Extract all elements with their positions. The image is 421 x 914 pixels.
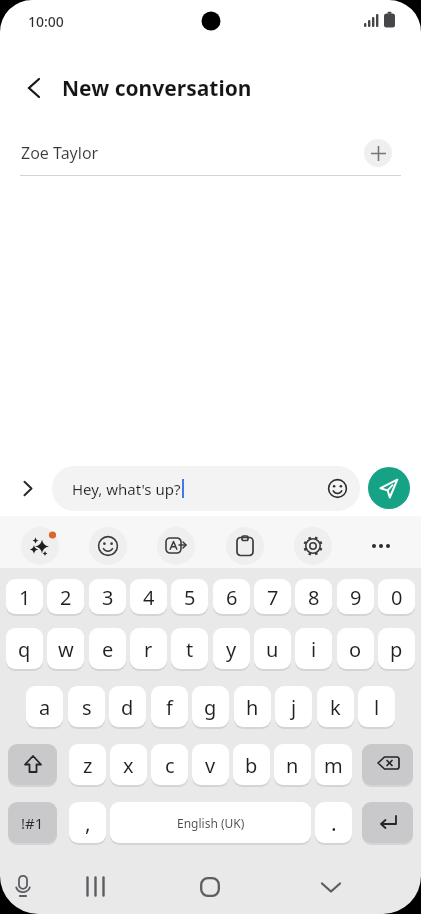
button[interactable]: g bbox=[192, 686, 229, 728]
button[interactable] bbox=[362, 527, 400, 565]
staticText: i bbox=[311, 636, 317, 663]
button[interactable]: s bbox=[68, 686, 105, 728]
staticText: , bbox=[85, 809, 91, 838]
staticText: 6 bbox=[226, 584, 238, 611]
button[interactable]: h bbox=[234, 686, 271, 728]
button[interactable]: 4 bbox=[130, 579, 167, 615]
staticText: English (UK) bbox=[177, 815, 245, 831]
button[interactable] bbox=[89, 527, 127, 565]
staticText: n bbox=[286, 752, 299, 779]
staticText: 5 bbox=[184, 584, 196, 611]
button[interactable] bbox=[321, 883, 341, 903]
button[interactable] bbox=[364, 139, 392, 167]
button[interactable]: j bbox=[275, 686, 312, 728]
staticText: t bbox=[186, 636, 194, 663]
button[interactable]: t bbox=[171, 628, 208, 670]
button[interactable] bbox=[368, 467, 410, 509]
button[interactable]: m bbox=[315, 744, 352, 786]
staticText: g bbox=[204, 694, 217, 721]
staticText: w bbox=[58, 636, 74, 663]
button[interactable] bbox=[226, 527, 264, 565]
staticText: v bbox=[205, 752, 216, 779]
button[interactable] bbox=[8, 744, 57, 786]
button[interactable]: , bbox=[69, 802, 106, 844]
button[interactable] bbox=[294, 527, 332, 565]
button[interactable]: 0 bbox=[378, 579, 415, 615]
button[interactable]: 8 bbox=[295, 579, 332, 615]
button[interactable]: f bbox=[151, 686, 188, 728]
staticText: 3 bbox=[102, 584, 114, 611]
button[interactable]: y bbox=[213, 628, 250, 670]
button[interactable]: k bbox=[317, 686, 354, 728]
staticText: !#1 bbox=[21, 813, 44, 833]
button[interactable] bbox=[21, 481, 36, 496]
staticText: 8 bbox=[308, 584, 320, 611]
button[interactable]: w bbox=[47, 628, 84, 670]
button[interactable]: i bbox=[295, 628, 332, 670]
staticText: k bbox=[330, 694, 341, 721]
staticText: j bbox=[291, 694, 297, 721]
staticText: s bbox=[82, 694, 92, 721]
button[interactable]: p bbox=[378, 628, 415, 670]
button[interactable]: 7 bbox=[254, 579, 291, 615]
button[interactable]: e bbox=[89, 628, 126, 670]
button[interactable] bbox=[86, 877, 105, 896]
staticText: p bbox=[390, 636, 403, 663]
button[interactable]: o bbox=[337, 628, 374, 670]
button[interactable]: v bbox=[192, 744, 229, 786]
button[interactable]: English (UK) bbox=[110, 802, 311, 844]
staticText: 4 bbox=[143, 584, 155, 611]
staticText: f bbox=[166, 694, 173, 721]
button[interactable]: n bbox=[274, 744, 311, 786]
staticText: u bbox=[266, 636, 279, 663]
staticText: Hey, what's up? bbox=[72, 479, 181, 499]
staticText: h bbox=[246, 694, 259, 721]
staticText: 0 bbox=[391, 584, 403, 611]
staticText: e bbox=[102, 636, 114, 663]
staticText: New conversation bbox=[62, 74, 252, 103]
staticText: 2 bbox=[60, 584, 72, 611]
button[interactable]: 3 bbox=[89, 579, 126, 615]
staticText: a bbox=[39, 694, 51, 721]
staticText: r bbox=[144, 636, 153, 663]
staticText: b bbox=[245, 752, 258, 779]
staticText: d bbox=[121, 694, 134, 721]
staticText: l bbox=[374, 694, 380, 721]
button[interactable] bbox=[157, 527, 195, 565]
button[interactable]: x bbox=[110, 744, 147, 786]
staticText: 10:00 bbox=[28, 12, 64, 31]
button[interactable]: !#1 bbox=[8, 802, 57, 844]
staticText: o bbox=[349, 636, 362, 663]
button[interactable]: r bbox=[130, 628, 167, 670]
staticText: c bbox=[165, 752, 175, 779]
button[interactable]: l bbox=[358, 686, 395, 728]
button[interactable] bbox=[362, 802, 413, 844]
button[interactable]: a bbox=[26, 686, 63, 728]
button[interactable]: . bbox=[315, 802, 352, 844]
button[interactable] bbox=[21, 527, 59, 565]
button[interactable] bbox=[200, 877, 220, 897]
button[interactable]: 6 bbox=[213, 579, 250, 615]
button[interactable]: z bbox=[69, 744, 106, 786]
button[interactable]: b bbox=[233, 744, 270, 786]
staticText: 9 bbox=[350, 584, 362, 611]
button[interactable]: Hey, what's up? bbox=[52, 466, 360, 511]
button[interactable] bbox=[362, 744, 413, 786]
staticText: q bbox=[18, 636, 31, 663]
button[interactable] bbox=[24, 77, 46, 99]
staticText: Zoe Taylor bbox=[21, 142, 99, 164]
staticText: 7 bbox=[267, 584, 279, 611]
button[interactable]: c bbox=[151, 744, 188, 786]
button[interactable]: q bbox=[6, 628, 43, 670]
staticText: x bbox=[123, 752, 134, 779]
button[interactable]: 5 bbox=[171, 579, 208, 615]
staticText: . bbox=[331, 809, 337, 838]
button[interactable]: d bbox=[109, 686, 146, 728]
button[interactable]: 2 bbox=[47, 579, 84, 615]
button[interactable]: 9 bbox=[337, 579, 374, 615]
button[interactable]: 1 bbox=[6, 579, 43, 615]
staticText: y bbox=[226, 636, 237, 663]
staticText: m bbox=[324, 752, 343, 779]
button[interactable] bbox=[13, 875, 33, 897]
button[interactable]: u bbox=[254, 628, 291, 670]
